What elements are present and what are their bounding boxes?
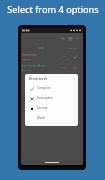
button[interactable]: Incomplete bbox=[25, 93, 78, 103]
staticText: Exercise for 45 min bbox=[22, 64, 46, 68]
button[interactable]: Blank bbox=[25, 113, 78, 123]
button[interactable]: Exercise for 45 min bbox=[21, 62, 83, 73]
staticText: Exempt bbox=[37, 106, 48, 110]
staticText: Brush teeth bbox=[22, 53, 37, 57]
staticText: Every day bbox=[22, 69, 32, 72]
staticText: 31% bbox=[62, 66, 67, 69]
staticText: Fri, Jan 6 bbox=[69, 46, 79, 49]
button[interactable]: Exempt bbox=[25, 103, 78, 113]
button[interactable]: Previous bbox=[60, 35, 67, 42]
staticText: Every day bbox=[22, 58, 32, 61]
staticText: Select from 4 options bbox=[7, 3, 99, 16]
button[interactable]: Brush teeth bbox=[21, 51, 83, 62]
staticText: Incomplete bbox=[37, 96, 54, 100]
button[interactable]: Complete bbox=[25, 83, 78, 93]
button[interactable]: More options bbox=[74, 35, 81, 42]
staticText: Complete bbox=[37, 86, 51, 90]
staticText: Blank bbox=[37, 116, 45, 120]
staticText: 72% bbox=[62, 55, 67, 58]
button[interactable]: Calendar bbox=[67, 35, 74, 42]
staticText: Brush teeth bbox=[29, 77, 47, 81]
